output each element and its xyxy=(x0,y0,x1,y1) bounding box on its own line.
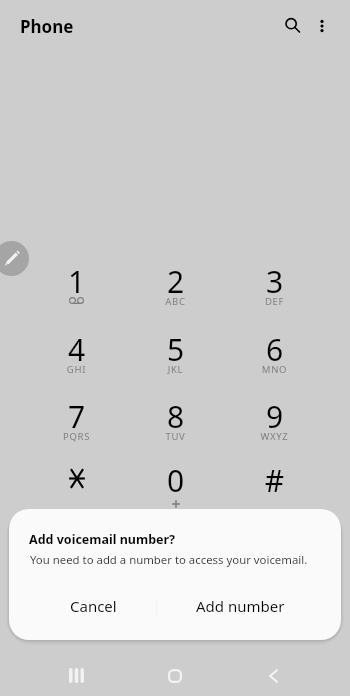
button[interactable]: 4 xyxy=(27,321,126,388)
button[interactable] xyxy=(27,452,126,519)
button[interactable]: 3 xyxy=(225,253,324,320)
staticText: # xyxy=(225,460,324,501)
staticText: DEF xyxy=(225,295,324,308)
staticText: Add voicemail number? xyxy=(29,531,176,548)
staticText: TUV xyxy=(126,430,225,443)
staticText: 0 xyxy=(126,460,225,501)
staticText: ABC xyxy=(126,295,225,308)
button[interactable]: Edit xyxy=(0,241,29,276)
staticText: 6 xyxy=(225,329,324,370)
button[interactable]: Add number xyxy=(160,589,321,623)
staticText: 8 xyxy=(126,396,225,437)
button[interactable]: 9 xyxy=(225,388,324,455)
button[interactable]: 2 xyxy=(126,253,225,320)
staticText: Phone xyxy=(20,15,74,38)
button[interactable]: # xyxy=(225,452,324,519)
button[interactable]: Cancel xyxy=(29,589,157,623)
button[interactable]: Recent apps xyxy=(60,659,93,692)
button[interactable]: 5 xyxy=(126,321,225,388)
staticText: Add number xyxy=(196,596,285,616)
staticText: You need to add a number to access your … xyxy=(30,552,308,567)
button[interactable]: Back xyxy=(256,659,289,692)
button[interactable]: 7 xyxy=(27,388,126,455)
staticText: 2 xyxy=(126,261,225,302)
button[interactable]: 6 xyxy=(225,321,324,388)
staticText: 1 xyxy=(27,261,126,302)
button[interactable]: Search xyxy=(277,10,309,42)
button[interactable]: 0 xyxy=(126,452,225,519)
staticText: Cancel xyxy=(70,596,117,616)
staticText: 7 xyxy=(27,396,126,437)
button[interactable]: 8 xyxy=(126,388,225,455)
staticText: 9 xyxy=(225,396,324,437)
button[interactable]: 1 xyxy=(27,253,126,320)
staticText: WXYZ xyxy=(225,430,324,443)
button[interactable]: More options xyxy=(306,10,338,42)
button[interactable]: Home xyxy=(158,659,191,692)
staticText: PQRS xyxy=(27,430,126,443)
staticText: GHI xyxy=(27,363,126,376)
staticText: 5 xyxy=(126,329,225,370)
staticText: JKL xyxy=(126,363,225,376)
staticText: 4 xyxy=(27,329,126,370)
staticText: 3 xyxy=(225,261,324,302)
staticText: MNO xyxy=(225,363,324,376)
